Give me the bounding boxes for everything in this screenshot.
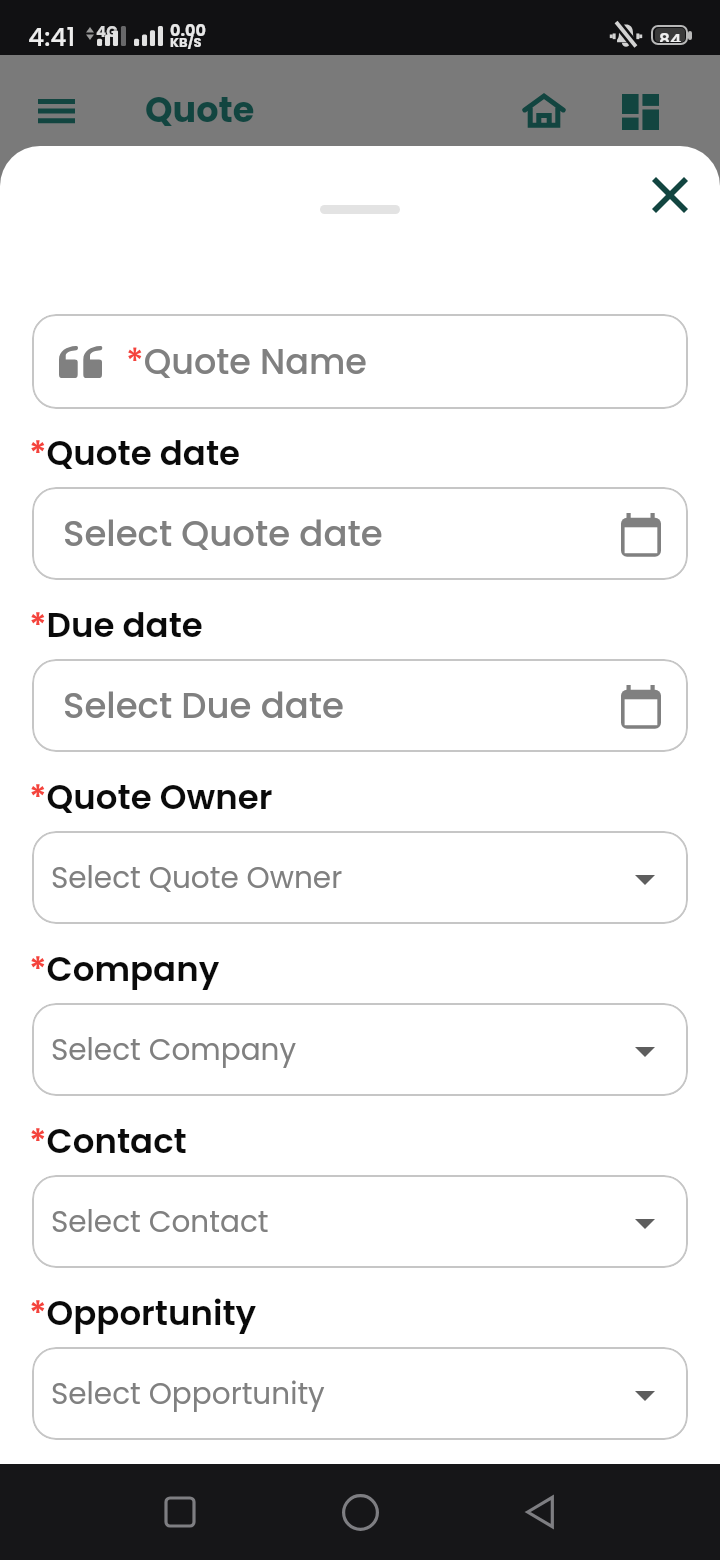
button[interactable]: Back	[505, 1477, 575, 1547]
button[interactable]: Home	[325, 1477, 395, 1547]
button[interactable]: Dashboard	[606, 78, 674, 146]
staticText: *Quote Owner	[29, 773, 273, 821]
staticText: Select Quote Owner	[51, 857, 343, 898]
staticText: 0.00	[170, 19, 206, 41]
staticText: *Due date	[29, 601, 203, 649]
staticText: *Quote date	[29, 429, 241, 477]
button[interactable]: Recent apps	[145, 1477, 215, 1547]
staticText: Select Opportunity	[51, 1373, 325, 1414]
button[interactable]: Select Contact	[32, 1175, 688, 1268]
staticText: 84	[659, 28, 682, 42]
staticText: 4G	[96, 21, 118, 42]
staticText: *Company	[29, 945, 220, 993]
staticText: *Contact	[29, 1117, 187, 1165]
staticText: Select Company	[51, 1029, 297, 1070]
staticText: Select Quote date	[63, 509, 383, 559]
button[interactable]: Select Quote Owner	[32, 831, 688, 924]
button[interactable]: Select Opportunity	[32, 1347, 688, 1440]
staticText: KB/S	[170, 33, 202, 51]
button[interactable]: Select Quote date	[32, 487, 688, 580]
staticText: *Quote Name	[126, 337, 367, 386]
button[interactable]: Home	[510, 77, 578, 145]
staticText: Quote	[145, 85, 255, 134]
button[interactable]: Select Company	[32, 1003, 688, 1096]
button[interactable]: Menu	[22, 77, 90, 145]
staticText: *Opportunity	[29, 1289, 257, 1337]
button[interactable]: Close	[634, 159, 706, 231]
button[interactable]: *Quote Name	[32, 314, 688, 409]
staticText: Select Due date	[63, 681, 344, 731]
button[interactable]: Select Due date	[32, 659, 688, 752]
staticText: Select Contact	[51, 1201, 269, 1242]
staticText: 4:41	[28, 20, 76, 55]
